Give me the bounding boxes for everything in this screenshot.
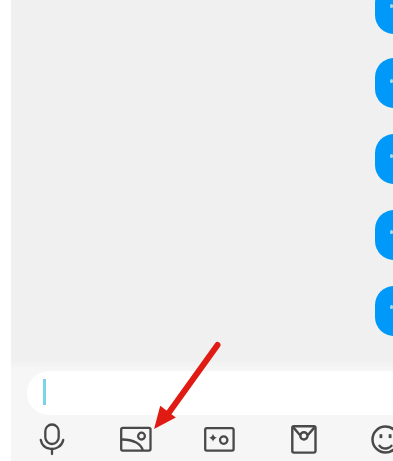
button[interactable]: Message input	[27, 371, 393, 415]
button[interactable]: Emoji	[364, 418, 393, 461]
button[interactable]: AI image	[197, 418, 241, 461]
button[interactable]: Gift	[281, 418, 325, 461]
button[interactable]: Photo	[114, 418, 158, 461]
button[interactable]: Message	[375, 286, 393, 336]
button[interactable]: Voice message	[30, 418, 74, 461]
button[interactable]: Message	[375, 210, 393, 260]
button[interactable]: Message	[375, 58, 393, 108]
button[interactable]: Message	[375, 0, 393, 34]
button[interactable]: Message	[375, 134, 393, 184]
